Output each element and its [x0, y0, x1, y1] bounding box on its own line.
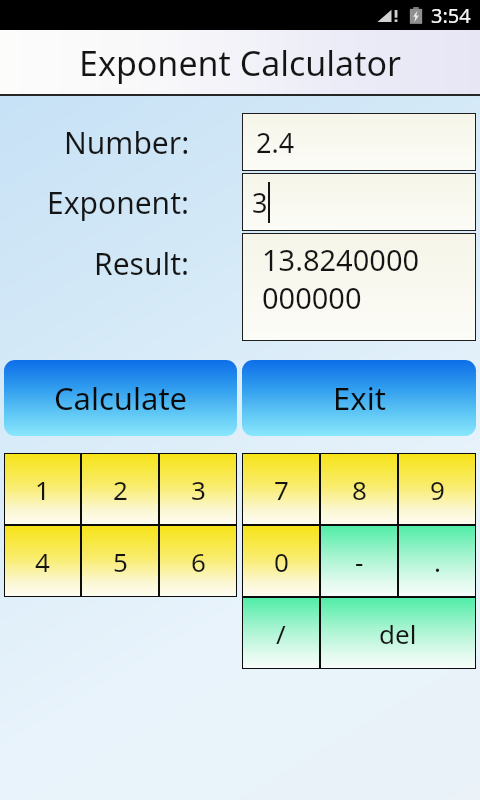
button[interactable]: 8: [320, 453, 398, 525]
button[interactable]: 9: [398, 453, 476, 525]
button[interactable]: /: [242, 597, 320, 669]
staticText: del: [379, 616, 417, 651]
staticText: Exponent Calculator: [79, 40, 402, 86]
staticText: 5: [113, 544, 128, 579]
staticText: 9: [430, 472, 445, 507]
staticText: -: [355, 544, 364, 579]
staticText: Calculate: [54, 377, 188, 419]
staticText: 7: [274, 472, 289, 507]
staticText: 0: [274, 544, 289, 579]
button[interactable]: .: [398, 525, 476, 597]
staticText: 8: [352, 472, 367, 507]
staticText: 3: [191, 472, 206, 507]
button[interactable]: 3: [159, 453, 237, 525]
button[interactable]: Exit: [242, 360, 476, 436]
button[interactable]: 4: [4, 525, 81, 597]
button[interactable]: Calculate: [4, 360, 237, 436]
button[interactable]: 13.8240000 000000: [242, 233, 476, 341]
button[interactable]: 0: [242, 525, 320, 597]
button[interactable]: 7: [242, 453, 320, 525]
button[interactable]: 2.4: [242, 113, 476, 171]
staticText: .: [434, 544, 441, 579]
staticText: Result:: [94, 243, 190, 284]
staticText: 6: [191, 544, 206, 579]
other: Signal strength: [377, 7, 399, 24]
staticText: 2: [113, 472, 128, 507]
staticText: 13.8240000 000000: [262, 240, 420, 317]
button[interactable]: 1: [4, 453, 81, 525]
staticText: 3:54: [431, 2, 471, 29]
staticText: 4: [35, 544, 50, 579]
staticText: 1: [35, 472, 50, 507]
staticText: 2.4: [256, 124, 295, 161]
button[interactable]: 5: [81, 525, 159, 597]
staticText: Number:: [64, 122, 190, 163]
staticText: Exponent:: [47, 182, 190, 223]
button[interactable]: del: [320, 597, 476, 669]
button[interactable]: 2: [81, 453, 159, 525]
other: Battery charging: [409, 6, 423, 25]
button[interactable]: 6: [159, 525, 237, 597]
staticText: /: [276, 616, 286, 651]
button[interactable]: -: [320, 525, 398, 597]
staticText: 3: [252, 184, 268, 221]
button[interactable]: 3: [242, 173, 476, 231]
staticText: Exit: [333, 377, 386, 419]
